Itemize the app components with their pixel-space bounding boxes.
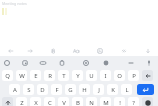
- staticText: Meeting notes: [2, 1, 27, 6]
- staticText: B: [76, 99, 80, 106]
- button[interactable]: Z: [16, 97, 27, 106]
- button[interactable]: N: [86, 97, 97, 106]
- button[interactable]: A: [9, 84, 20, 95]
- staticText: Z: [20, 99, 24, 106]
- staticText: P: [132, 72, 136, 80]
- button[interactable]: K: [107, 84, 118, 95]
- button[interactable]: Enter: [137, 84, 154, 95]
- button[interactable]: C: [44, 97, 55, 106]
- button[interactable]: Backspace: [142, 70, 153, 81]
- button[interactable]: X: [30, 97, 41, 106]
- staticText: W: [19, 72, 25, 80]
- button[interactable]: More options: [141, 44, 155, 58]
- button[interactable]: J: [93, 84, 104, 95]
- button[interactable]: T: [58, 70, 69, 81]
- button[interactable]: Voice input: [142, 56, 156, 70]
- button[interactable]: More: [124, 56, 138, 70]
- button[interactable]: Insert image: [93, 44, 107, 58]
- button[interactable]: GIF: [36, 56, 50, 70]
- staticText: U: [89, 72, 94, 80]
- staticText: I: [104, 72, 107, 80]
- button[interactable]: Insert link: [117, 44, 131, 58]
- staticText: R: [48, 72, 52, 80]
- staticText: M: [103, 99, 109, 106]
- button[interactable]: I: [100, 70, 111, 81]
- button[interactable]: Q: [2, 70, 13, 81]
- button[interactable]: Google search: [0, 56, 14, 70]
- staticText: S: [27, 86, 31, 94]
- button[interactable]: D: [37, 84, 48, 95]
- staticText: E: [34, 72, 38, 80]
- button[interactable]: S: [23, 84, 34, 95]
- staticText: Q: [5, 72, 10, 80]
- button[interactable]: G: [65, 84, 76, 95]
- staticText: C: [48, 99, 52, 106]
- staticText: N: [89, 99, 94, 106]
- button[interactable]: Settings: [79, 56, 93, 70]
- staticText: A: [13, 86, 17, 94]
- staticText: O: [117, 72, 122, 80]
- button[interactable]: L: [121, 84, 132, 95]
- button[interactable]: B: [72, 97, 83, 106]
- staticText: ?: [132, 99, 135, 106]
- button[interactable]: V: [58, 97, 69, 106]
- staticText: V: [62, 99, 66, 106]
- staticText: J: [98, 86, 100, 94]
- button[interactable]: R: [44, 70, 55, 81]
- button[interactable]: Emoji: [99, 56, 113, 70]
- button[interactable]: P: [128, 70, 139, 81]
- button[interactable]: E: [30, 70, 41, 81]
- button[interactable]: Bold: [46, 44, 60, 58]
- staticText: D: [40, 86, 45, 94]
- staticText: H: [82, 86, 87, 94]
- button[interactable]: U: [86, 70, 97, 81]
- button[interactable]: ?: [128, 97, 139, 106]
- button[interactable]: Redo: [23, 44, 37, 58]
- staticText: Y: [76, 72, 80, 80]
- button[interactable]: O: [114, 70, 125, 81]
- staticText: F: [55, 86, 59, 94]
- button[interactable]: Shift: [2, 97, 13, 106]
- button[interactable]: Y: [72, 70, 83, 81]
- button[interactable]: M: [100, 97, 111, 106]
- staticText: X: [34, 99, 38, 106]
- button[interactable]: Emoji: [142, 97, 153, 106]
- staticText: L: [125, 86, 129, 94]
- button[interactable]: Text style: [69, 44, 83, 58]
- button[interactable]: F: [51, 84, 62, 95]
- button[interactable]: Stickers: [18, 56, 32, 70]
- staticText: G: [68, 86, 73, 94]
- button[interactable]: H: [79, 84, 90, 95]
- button[interactable]: Clipboard: [55, 56, 69, 70]
- button[interactable]: Undo: [4, 44, 18, 58]
- staticText: !: [119, 99, 121, 106]
- button[interactable]: W: [16, 70, 27, 81]
- staticText: T: [62, 72, 66, 80]
- staticText: K: [111, 86, 115, 94]
- button[interactable]: !: [114, 97, 125, 106]
